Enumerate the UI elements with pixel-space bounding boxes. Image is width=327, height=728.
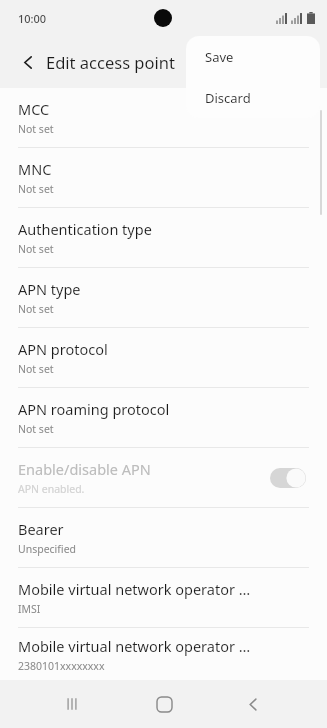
button[interactable]: APN protocol: [0, 328, 327, 387]
staticText: Discard: [205, 89, 251, 107]
staticText: Not set: [18, 122, 54, 136]
button[interactable]: Navigate up: [6, 40, 50, 84]
staticText: APN enabled.: [18, 482, 85, 496]
staticText: MNC: [18, 159, 52, 179]
staticText: 2380101xxxxxxxx: [18, 659, 105, 673]
button[interactable]: Bearer: [0, 508, 327, 567]
staticText: Edit access point: [46, 51, 175, 73]
button[interactable]: APN type: [0, 268, 327, 327]
staticText: Unspecified: [18, 542, 77, 556]
staticText: Bearer: [18, 519, 64, 539]
button[interactable]: Back: [231, 682, 275, 726]
staticText: Mobile virtual network operator type: [18, 579, 253, 599]
staticText: Enable/disable APN: [18, 459, 151, 479]
staticText: APN protocol: [18, 339, 108, 359]
staticText: IMSI: [18, 602, 41, 616]
button[interactable]: Enable or disable APN: [267, 463, 309, 493]
button[interactable]: MNC: [0, 148, 327, 207]
button[interactable]: Home: [142, 682, 186, 726]
staticText: 10:00: [18, 11, 47, 26]
staticText: MCC: [18, 99, 50, 119]
staticText: APN type: [18, 279, 81, 299]
button[interactable]: Mobile virtual network operator value: [0, 628, 327, 680]
staticText: Authentication type: [18, 219, 152, 239]
staticText: APN roaming protocol: [18, 399, 170, 419]
staticText: Not set: [18, 242, 54, 256]
staticText: Not set: [18, 302, 54, 316]
button[interactable]: Authentication type: [0, 208, 327, 267]
staticText: Save: [205, 48, 234, 66]
button[interactable]: APN roaming protocol: [0, 388, 327, 447]
button[interactable]: MCC: [0, 88, 327, 147]
button[interactable]: Discard: [186, 77, 320, 118]
staticText: Mobile virtual network operator value: [18, 636, 253, 656]
button[interactable]: Recent apps: [50, 682, 94, 726]
staticText: Not set: [18, 422, 54, 436]
button[interactable]: Mobile virtual network operator type: [0, 568, 327, 627]
button[interactable]: Enable/disable APN: [0, 448, 327, 507]
button[interactable]: Save: [186, 36, 320, 77]
staticText: Not set: [18, 182, 54, 196]
staticText: Not set: [18, 362, 54, 376]
